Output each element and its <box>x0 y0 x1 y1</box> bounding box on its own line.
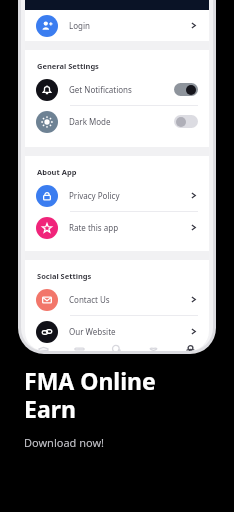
button[interactable]: Home <box>25 347 61 351</box>
staticText: Privacy Policy <box>69 190 120 201</box>
staticText: Social Settings <box>37 271 92 281</box>
staticText: Login <box>69 20 90 31</box>
staticText: Get Notifications <box>69 84 132 95</box>
button[interactable]: Contact Us <box>25 284 209 316</box>
button[interactable]: Login <box>25 10 209 41</box>
button[interactable]: Favorites <box>135 347 172 351</box>
staticText: FMA Online Earn <box>24 365 156 425</box>
button[interactable]: Privacy Policy <box>25 180 209 212</box>
button[interactable]: Rate this app <box>25 212 209 243</box>
staticText: Rate this app <box>69 222 119 233</box>
staticText: General Settings <box>37 61 99 71</box>
staticText: Dark Mode <box>69 116 111 127</box>
button[interactable]: Profile <box>172 347 209 351</box>
button[interactable]: Our Website <box>25 316 209 347</box>
staticText: Our Website <box>69 326 116 337</box>
button[interactable]: Get Notifications <box>25 74 209 106</box>
button[interactable]: Search <box>98 347 135 351</box>
staticText: Contact Us <box>69 294 110 305</box>
staticText: Download now! <box>24 435 105 450</box>
staticText: About App <box>37 167 77 177</box>
button[interactable]: Videos <box>61 347 98 351</box>
button[interactable]: Dark Mode <box>25 106 209 137</box>
